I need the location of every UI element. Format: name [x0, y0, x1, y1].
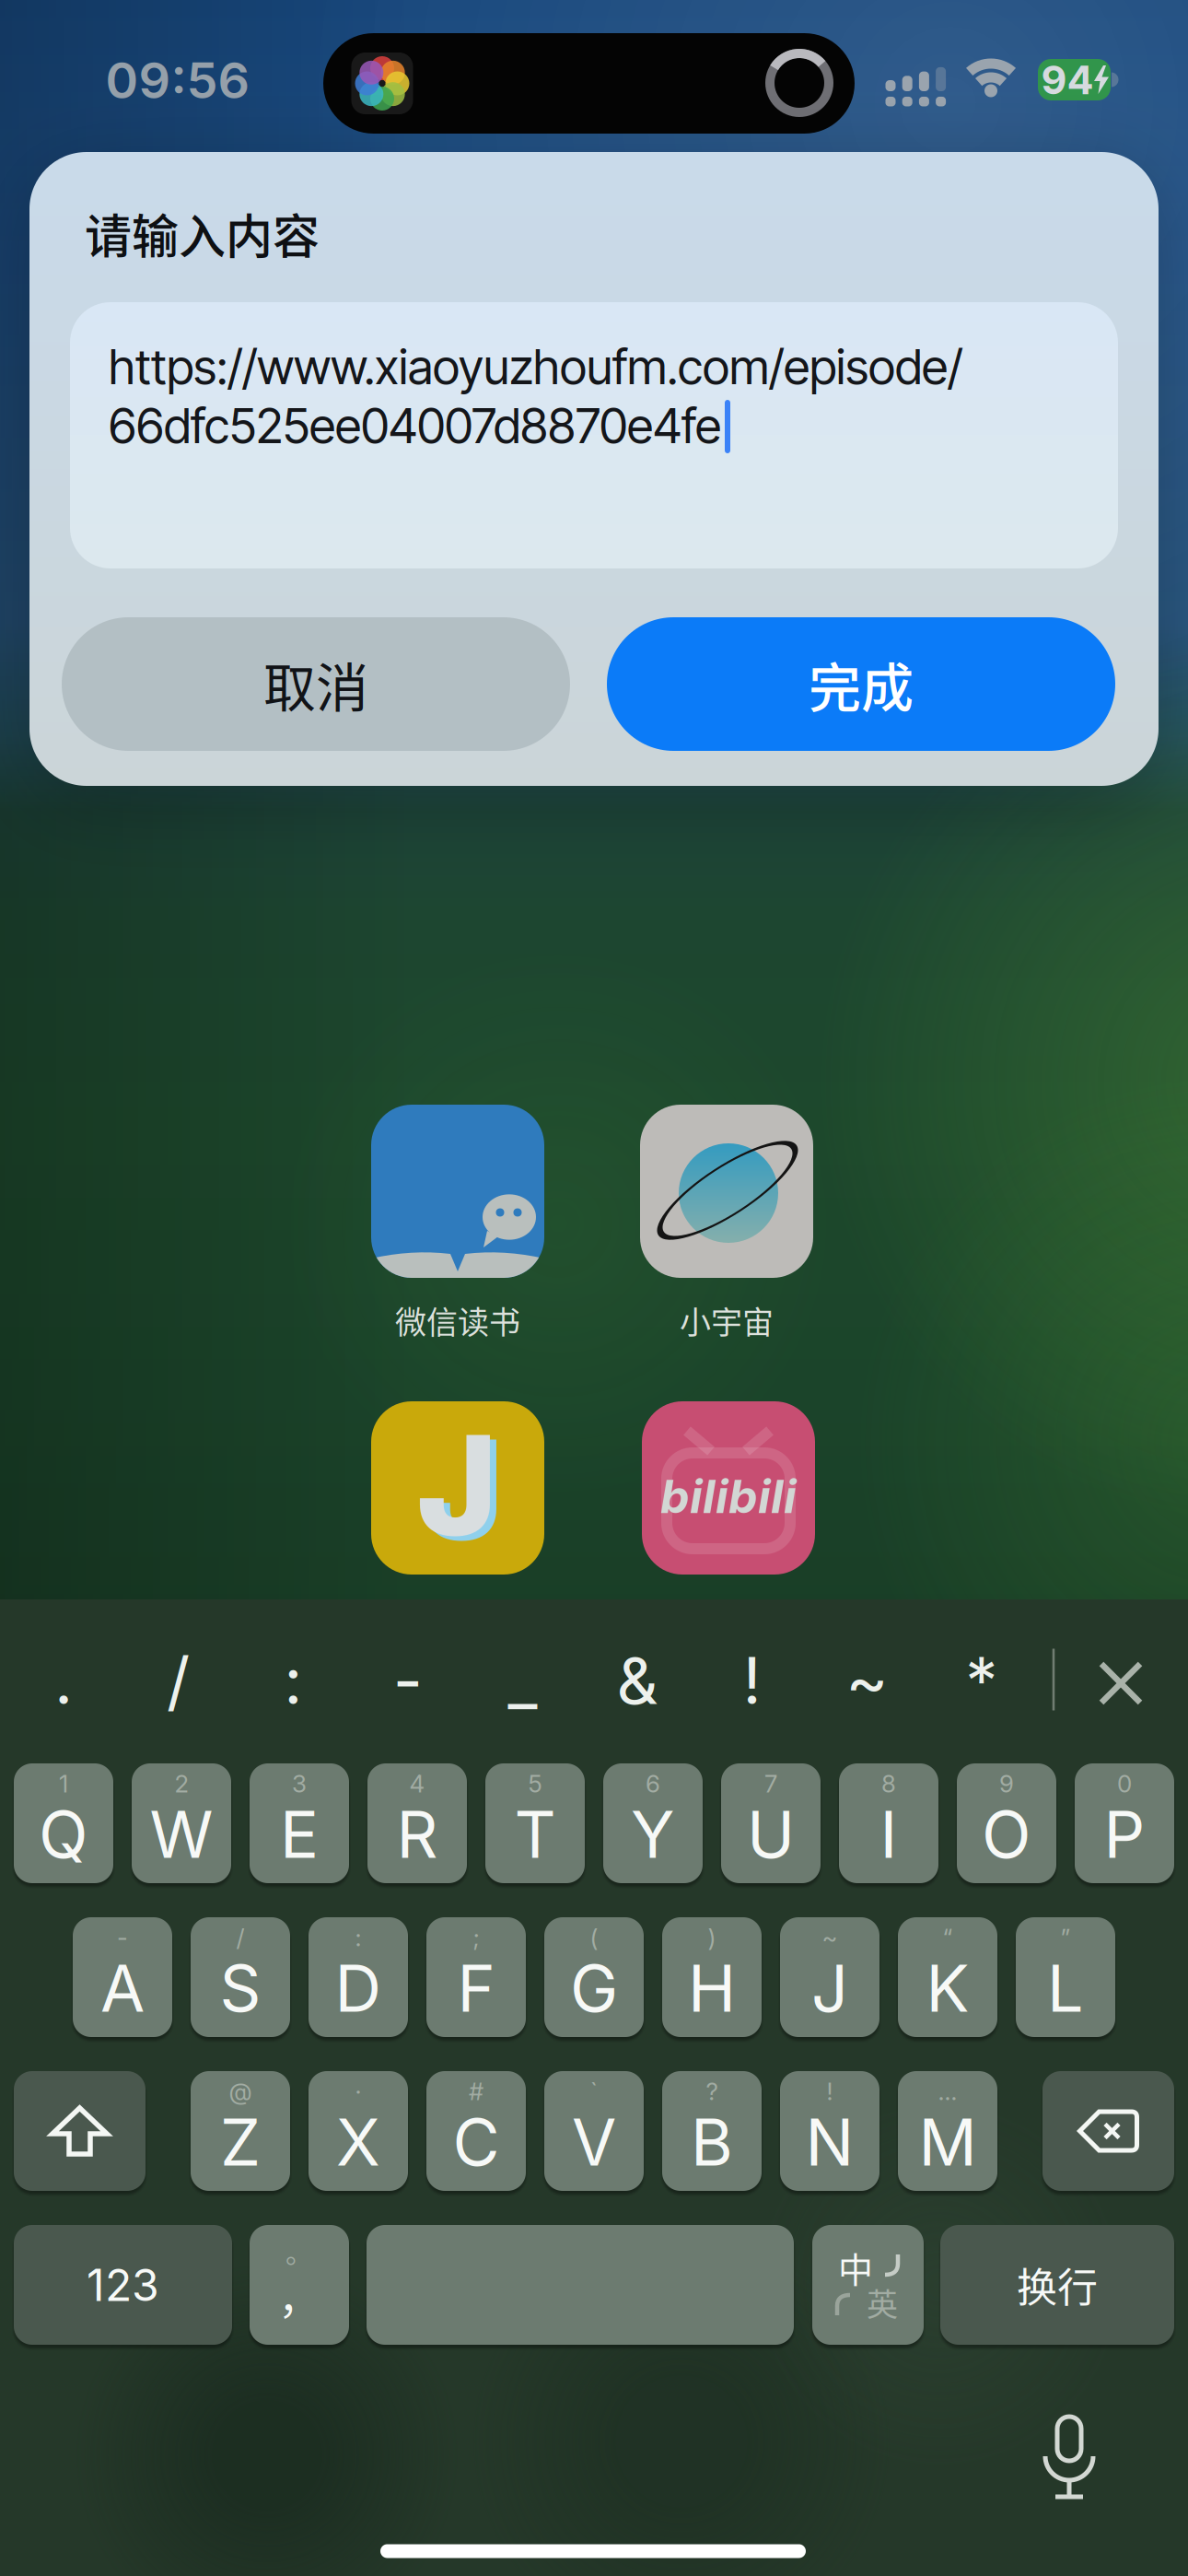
staticText: T	[514, 1796, 556, 1872]
staticText: J	[423, 1408, 504, 1571]
staticText: G	[570, 1950, 618, 2026]
button[interactable]: 8	[839, 1763, 938, 1883]
button[interactable]: Dismiss	[1079, 1642, 1162, 1725]
button[interactable]: @	[191, 2071, 290, 2191]
button[interactable]: 7	[721, 1763, 821, 1883]
button[interactable]: Shift	[14, 2071, 146, 2191]
staticText: S	[220, 1950, 261, 2026]
staticText: P	[1104, 1796, 1145, 1872]
button[interactable]: 3	[250, 1763, 349, 1883]
staticText: `	[590, 2077, 598, 2106]
staticText: 8	[881, 1770, 896, 1798]
button[interactable]: 微信读书	[371, 1105, 544, 1342]
staticText: N	[805, 2104, 854, 2180]
staticText: 取消	[263, 647, 368, 721]
button[interactable]: .	[17, 1636, 110, 1725]
staticText: J	[811, 1950, 848, 2026]
button[interactable]: !	[706, 1636, 798, 1725]
button[interactable]: (	[544, 1917, 644, 2037]
button[interactable]: 123	[14, 2225, 232, 2345]
staticText: 中	[838, 2243, 873, 2292]
staticText: “	[943, 1923, 953, 1952]
button[interactable]: ;	[426, 1917, 526, 2037]
staticText: ~	[846, 1642, 888, 1719]
staticText: !	[743, 1642, 761, 1719]
staticText: -	[117, 1923, 128, 1952]
button[interactable]: 换行	[940, 2225, 1174, 2345]
button[interactable]: -	[73, 1917, 172, 2037]
button[interactable]: &	[591, 1636, 683, 1725]
button[interactable]: *	[935, 1636, 1028, 1725]
staticText: /	[236, 1923, 245, 1952]
staticText: @	[229, 2077, 252, 2106]
button[interactable]: Comma	[250, 2225, 349, 2345]
staticText: ~	[822, 1923, 838, 1952]
staticText: Z	[220, 2104, 261, 2180]
button[interactable]: /	[191, 1917, 290, 2037]
staticText: M	[919, 2104, 977, 2180]
staticText: 4	[409, 1770, 425, 1798]
button[interactable]: :	[309, 1917, 408, 2037]
staticText: ，	[278, 2265, 320, 2325]
button[interactable]: 小宇宙	[640, 1105, 813, 1342]
staticText: 94	[1041, 56, 1094, 103]
button[interactable]: )	[662, 1917, 762, 2037]
button[interactable]: Dictation	[1032, 2411, 1106, 2512]
button[interactable]: 5	[485, 1763, 585, 1883]
button[interactable]: 9	[957, 1763, 1056, 1883]
staticText: C	[453, 2104, 500, 2180]
button[interactable]: #	[426, 2071, 526, 2191]
staticText: 5	[528, 1770, 542, 1798]
staticText: _	[508, 1642, 537, 1719]
button[interactable]: Space	[367, 2225, 794, 2345]
button[interactable]: 中/英 switch	[812, 2225, 924, 2345]
button[interactable]: 0	[1075, 1763, 1174, 1883]
button[interactable]: 完成	[607, 617, 1115, 751]
button[interactable]: _	[476, 1636, 569, 1725]
staticText: W	[150, 1796, 213, 1872]
staticText: 9	[999, 1770, 1014, 1798]
button[interactable]: 4	[367, 1763, 467, 1883]
button[interactable]: “	[898, 1917, 997, 2037]
staticText: 2	[175, 1770, 188, 1798]
button[interactable]: 2	[132, 1763, 231, 1883]
button[interactable]: /	[132, 1636, 224, 1725]
button[interactable]: ~	[821, 1636, 913, 1725]
staticText: 微信读书	[395, 1298, 520, 1342]
button[interactable]: ~	[780, 1917, 879, 2037]
staticText: :	[355, 1923, 361, 1952]
staticText: K	[926, 1950, 969, 2026]
staticText: J	[416, 1404, 497, 1567]
button[interactable]: -	[362, 1636, 454, 1725]
button[interactable]: 6	[603, 1763, 703, 1883]
staticText: F	[457, 1950, 495, 2026]
button[interactable]: ?	[662, 2071, 762, 2191]
staticText: 7	[764, 1770, 777, 1798]
staticText: )	[708, 1923, 716, 1952]
staticText: A	[100, 1950, 145, 2026]
button[interactable]: 取消	[62, 617, 570, 751]
button[interactable]: `	[544, 2071, 644, 2191]
button[interactable]: ”	[1016, 1917, 1115, 2037]
button[interactable]: 1	[14, 1763, 113, 1883]
staticText: Y	[631, 1796, 675, 1872]
button[interactable]: Delete	[1042, 2071, 1174, 2191]
staticText: -	[393, 1642, 423, 1719]
button[interactable]: J app	[371, 1401, 544, 1575]
staticText: 。	[285, 2231, 313, 2270]
button[interactable]: :	[247, 1636, 339, 1725]
staticText: H	[688, 1950, 736, 2026]
staticText: 请输入内容	[85, 200, 320, 266]
staticText: 09:56	[105, 51, 250, 109]
staticText: !	[827, 2077, 833, 2106]
staticText: 0	[1117, 1770, 1132, 1798]
button[interactable]: !	[780, 2071, 879, 2191]
button[interactable]: …	[898, 2071, 997, 2191]
staticText: 66dfc525ee04007d8870e4fe	[109, 397, 721, 454]
staticText: 6	[646, 1770, 660, 1798]
staticText: 123	[87, 2259, 159, 2311]
staticText: 3	[292, 1770, 307, 1798]
button[interactable]: bilibili	[642, 1401, 815, 1575]
staticText: O	[982, 1796, 1031, 1872]
button[interactable]: ·	[309, 2071, 408, 2191]
